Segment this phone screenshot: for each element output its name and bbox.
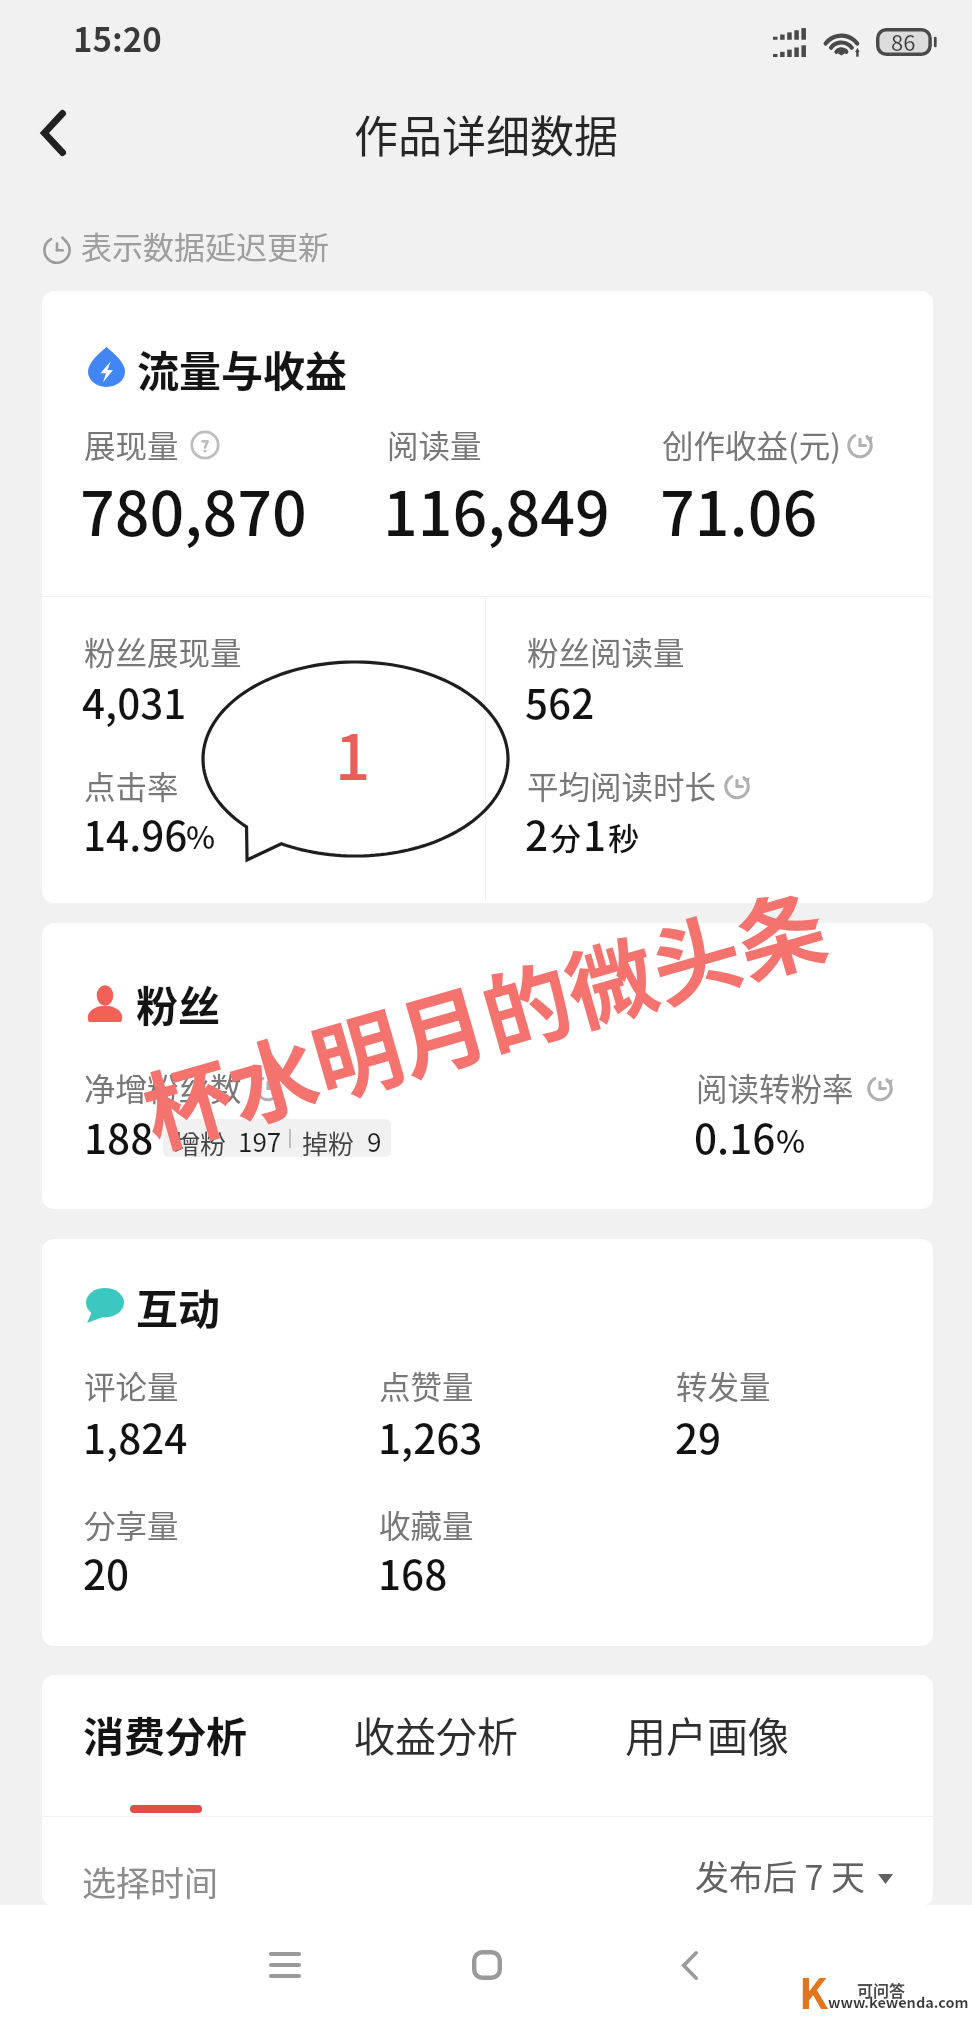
button[interactable]: 发布后 7 天: [696, 1845, 867, 1894]
staticText: 用户画像: [625, 1704, 789, 1763]
staticText: 阅读量: [387, 421, 482, 467]
button[interactable]: Home: [442, 1923, 532, 2007]
staticText: 作品详细数据: [354, 102, 618, 166]
staticText: 粉丝展现量: [84, 628, 242, 674]
staticText: 780,870: [80, 465, 307, 553]
staticText: 1: [583, 804, 607, 863]
staticText: 评论量: [84, 1362, 179, 1408]
staticText: 收藏量: [379, 1501, 474, 1547]
staticText: 平均阅读时长: [527, 762, 717, 808]
staticText: 创作收益(元): [662, 421, 841, 467]
staticText: 消费分析: [83, 1704, 247, 1763]
staticText: 杯水明月的微头条: [127, 856, 839, 1172]
staticText: www.kewenda.com: [828, 1991, 969, 2012]
staticText: 点击率: [84, 762, 179, 808]
staticText: 点赞量: [379, 1362, 474, 1408]
staticText: 发布后 7 天: [695, 1851, 866, 1900]
staticText: 71.06: [660, 465, 818, 553]
staticText: 净增粉丝数: [84, 1064, 242, 1110]
staticText: 14.96: [83, 804, 188, 863]
staticText: 86: [891, 25, 916, 57]
staticText: 0.16: [694, 1107, 776, 1166]
staticText: 562: [525, 672, 595, 731]
staticText: 1: [335, 708, 371, 798]
button[interactable]: 用户画像: [626, 1702, 790, 1761]
staticText: 粉丝阅读量: [527, 628, 685, 674]
button[interactable]: Back: [645, 1923, 735, 2007]
staticText: 168: [378, 1543, 448, 1602]
staticText: 1,824: [83, 1407, 188, 1466]
staticText: 收益分析: [354, 1704, 518, 1763]
staticText: 2: [525, 804, 549, 863]
button[interactable]: 收益分析: [355, 1702, 519, 1761]
staticText: 阅读转粉率: [696, 1064, 854, 1110]
staticText: 增粉: [174, 1124, 227, 1157]
staticText: 展现量: [84, 421, 179, 467]
staticText: 流量与收益: [137, 338, 348, 399]
staticText: 粉丝: [136, 973, 221, 1034]
staticText: 分: [550, 814, 581, 859]
staticText: 转发量: [676, 1362, 771, 1408]
staticText: 分享量: [84, 1501, 179, 1547]
staticText: 9: [367, 1122, 382, 1157]
staticText: 表示数据延迟更新: [81, 223, 329, 268]
staticText: 29: [675, 1407, 722, 1466]
staticText: K: [799, 1960, 828, 2021]
staticText: %: [776, 1117, 806, 1162]
button[interactable]: Back: [14, 94, 92, 172]
button[interactable]: Recent apps: [240, 1923, 330, 2007]
staticText: 互动: [136, 1276, 221, 1337]
staticText: 秒: [608, 814, 639, 859]
button[interactable]: 消费分析: [84, 1702, 248, 1761]
staticText: 20: [83, 1543, 130, 1602]
staticText: 选择时间: [82, 1857, 218, 1906]
staticText: 1,263: [378, 1407, 483, 1466]
staticText: 掉粉: [302, 1124, 355, 1157]
staticText: 4,031: [82, 672, 187, 731]
staticText: %: [186, 813, 216, 858]
staticText: 可问答: [857, 1978, 906, 2001]
staticText: 116,849: [383, 465, 610, 553]
staticText: 197: [238, 1122, 282, 1157]
staticText: 15:20: [73, 14, 162, 62]
staticText: 188: [84, 1107, 154, 1166]
